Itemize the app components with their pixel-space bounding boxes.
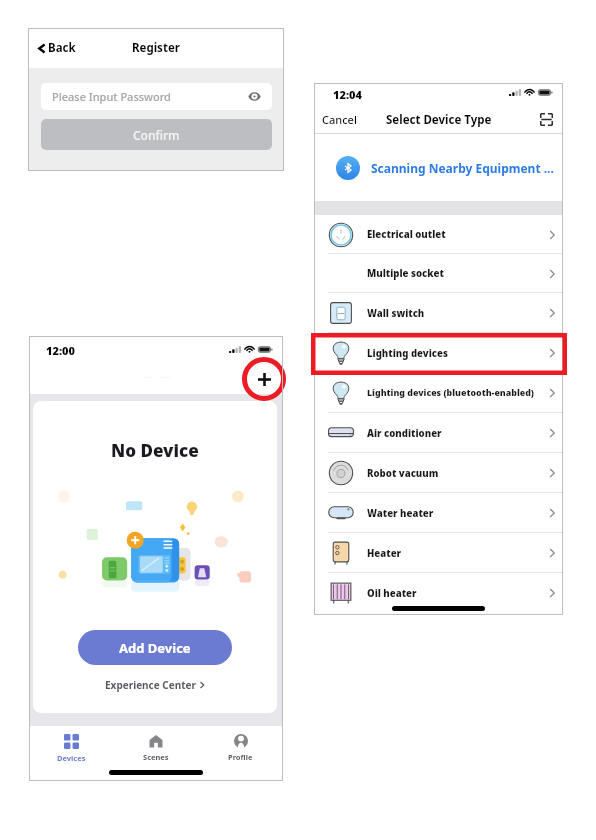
button[interactable]: Robot vacuum (314, 453, 563, 493)
staticText: Lighting devices (bluetooth-enabled) (367, 387, 541, 399)
button[interactable]: Air conditioner (314, 413, 563, 453)
button[interactable]: Scan QR code (540, 113, 553, 126)
button[interactable]: Electrical outlet (314, 215, 563, 254)
staticText: Scanning Nearby Equipment ... (371, 160, 554, 176)
button[interactable]: Lighting devices (bluetooth-enabled) (314, 373, 563, 413)
button[interactable]: Show password (248, 90, 261, 103)
staticText: No Device (111, 439, 199, 462)
staticText: Add Device (119, 639, 191, 657)
button[interactable]: Scanning Nearby Equipment ... (314, 134, 563, 201)
button[interactable]: Wall switch (314, 293, 563, 333)
button[interactable]: Scenes (113, 732, 198, 764)
button[interactable]: Multiple socket (314, 254, 563, 293)
staticText: Heater (367, 547, 541, 560)
staticText: Register (132, 40, 180, 56)
staticText: Back (48, 40, 76, 56)
staticText: Robot vacuum (367, 467, 541, 480)
staticText: Confirm (133, 127, 180, 143)
button[interactable]: Lighting devices (314, 333, 563, 373)
button[interactable]: Oil heater (314, 573, 563, 613)
staticText: Multiple socket (367, 267, 541, 280)
staticText: Electrical outlet (367, 228, 541, 241)
staticText: Experience Center (105, 678, 196, 692)
staticText: Please Input Password (52, 89, 171, 104)
staticText: Lighting devices (367, 347, 541, 360)
staticText: 12:04 (333, 87, 362, 102)
staticText: Devices (57, 753, 86, 763)
staticText: Oil heater (367, 587, 541, 600)
staticText: Wall switch (367, 307, 541, 320)
button[interactable]: Back (28, 36, 84, 60)
staticText: Select Device Type (386, 112, 492, 128)
button[interactable]: Profile (198, 732, 283, 764)
button[interactable]: Add device (252, 367, 276, 391)
button[interactable]: Heater (314, 533, 563, 573)
button[interactable]: Add Device (78, 630, 232, 665)
staticText: Profile (228, 752, 253, 762)
button[interactable]: Experience Center (99, 675, 211, 695)
button[interactable]: Cancel (314, 107, 365, 132)
button[interactable]: Devices (29, 732, 113, 765)
staticText: Cancel (322, 112, 357, 127)
staticText: Air conditioner (367, 427, 541, 440)
button[interactable]: Water heater (314, 493, 563, 533)
button[interactable]: Please Input Password (41, 83, 272, 110)
staticText: Scenes (143, 752, 169, 762)
staticText: 12:00 (46, 343, 75, 358)
staticText: Water heater (367, 507, 541, 520)
button[interactable]: Confirm (41, 119, 272, 150)
